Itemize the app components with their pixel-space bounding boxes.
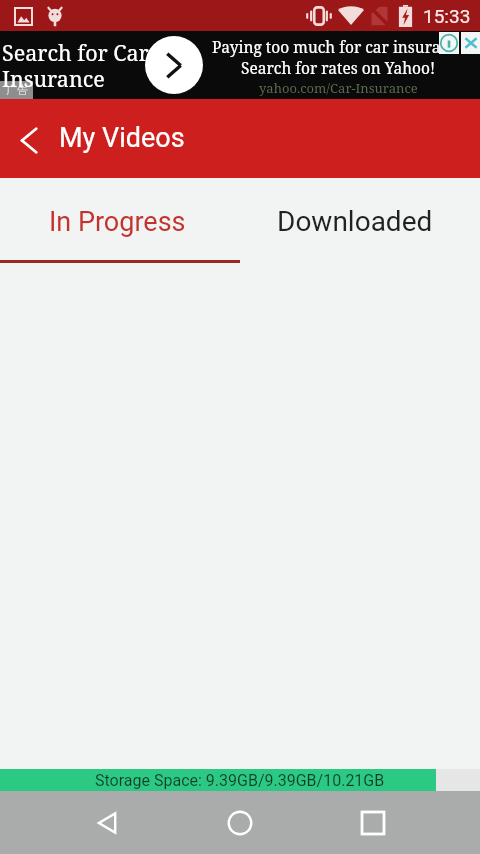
button[interactable]: Close ad (461, 32, 480, 54)
staticText: Paying too much for car insurance (212, 36, 465, 57)
button[interactable]: Back (3, 113, 55, 165)
staticText: Storage Space: 9.39GB/9.39GB/10.21GB (95, 771, 385, 790)
staticText: In Progress (49, 206, 186, 238)
staticText: 15:33 (423, 5, 471, 27)
button[interactable]: Home (216, 799, 264, 847)
button[interactable]: Ad info (439, 32, 459, 54)
button[interactable]: 广告 (0, 31, 480, 99)
staticText: 广告 (6, 83, 28, 97)
staticText: Search for rates on Yahoo! (241, 57, 436, 78)
staticText: Search for Car Insurance (2, 38, 149, 94)
button[interactable]: Recents (349, 799, 397, 847)
staticText: Downloaded (277, 205, 433, 238)
button[interactable]: Downloaded (240, 178, 480, 259)
button[interactable]: Back (84, 799, 132, 847)
button[interactable]: In Progress (0, 178, 240, 259)
staticText: My Videos (59, 122, 185, 154)
staticText: yahoo.com/Car-Insurance (259, 79, 418, 97)
